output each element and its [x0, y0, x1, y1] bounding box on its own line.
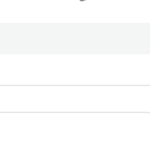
button[interactable]: List item 3	[0, 112, 150, 150]
button[interactable]: List item 2	[0, 85, 150, 112]
